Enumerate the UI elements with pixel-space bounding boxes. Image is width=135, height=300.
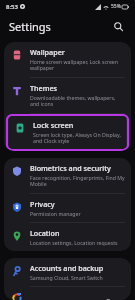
staticText: Home screen wallpaper, Lock screen wallp… bbox=[30, 58, 125, 72]
button[interactable]: Accounts and backup bbox=[4, 258, 131, 286]
staticText: Themes bbox=[30, 83, 58, 93]
staticText: Permission manager bbox=[30, 210, 81, 217]
staticText: Downloadable themes, wallpapers, and ico… bbox=[30, 94, 125, 108]
button[interactable]: Lock screen bbox=[7, 115, 128, 150]
staticText: Location settings, Location requests bbox=[30, 239, 118, 246]
staticText: Settings bbox=[9, 19, 51, 34]
button[interactable]: Biometrics and security bbox=[4, 158, 131, 193]
button[interactable]: Themes bbox=[4, 78, 131, 113]
staticText: Biometrics and security bbox=[30, 163, 111, 173]
button[interactable]: Privacy bbox=[4, 194, 131, 222]
staticText: Wallpaper bbox=[30, 47, 65, 57]
staticText: Lock screen bbox=[33, 120, 74, 130]
button[interactable]: Location bbox=[4, 223, 131, 251]
staticText: 55% bbox=[111, 3, 121, 10]
staticText: Privacy bbox=[30, 199, 55, 209]
button[interactable]: Wallpaper bbox=[4, 42, 131, 77]
button[interactable]: Google bbox=[4, 287, 131, 300]
staticText: Location bbox=[30, 228, 60, 238]
staticText: Face recognition, Fingerprints, Find My … bbox=[30, 174, 125, 188]
staticText: Accounts and backup bbox=[30, 263, 104, 273]
button[interactable]: Search bbox=[110, 18, 126, 34]
staticText: 8:53 bbox=[6, 3, 18, 11]
staticText: Screen lock type, Always On Display, and… bbox=[33, 131, 122, 145]
staticText: Samsung Cloud, Smart Switch bbox=[30, 274, 103, 281]
